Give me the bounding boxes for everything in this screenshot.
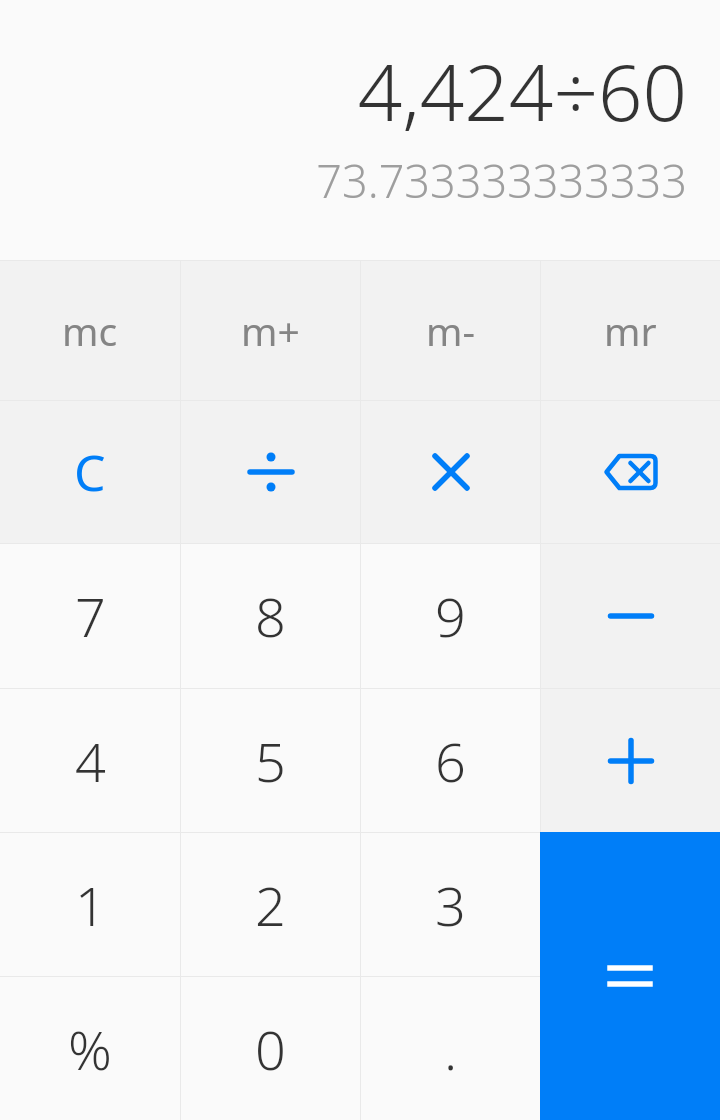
button[interactable] <box>541 833 720 976</box>
staticText: mc <box>62 304 118 357</box>
staticText: 8 <box>255 579 286 653</box>
button[interactable]: 6 <box>361 689 540 832</box>
button[interactable]: C <box>0 401 180 543</box>
button[interactable]: Divide <box>181 401 360 543</box>
button[interactable]: Equals <box>540 832 720 1120</box>
button[interactable] <box>541 544 720 688</box>
button[interactable]: 4 <box>0 689 180 832</box>
button[interactable]: 0 <box>181 977 360 1120</box>
staticText: 4 <box>75 724 106 798</box>
button[interactable]: 9 <box>361 544 540 688</box>
button[interactable]: Multiply <box>361 401 540 543</box>
button[interactable]: mc <box>0 261 180 400</box>
button[interactable]: 2 <box>181 833 360 976</box>
button[interactable]: 7 <box>0 544 180 688</box>
staticText: 1 <box>75 868 106 942</box>
button[interactable]: m+ <box>181 261 360 400</box>
staticText: m- <box>426 304 476 357</box>
staticText: 73.733333333333 <box>316 150 687 211</box>
button[interactable]: 1 <box>0 833 180 976</box>
staticText: 4,424÷60 <box>357 38 687 144</box>
button[interactable] <box>541 689 720 832</box>
button[interactable]: 3 <box>361 833 540 976</box>
staticText: C <box>74 438 106 506</box>
staticText: mr <box>604 304 657 357</box>
button[interactable]: 8 <box>181 544 360 688</box>
staticText: 3 <box>435 868 466 942</box>
staticText: 5 <box>255 724 286 798</box>
button[interactable]: % <box>0 977 180 1120</box>
staticText: 6 <box>435 724 466 798</box>
staticText: % <box>68 1012 112 1086</box>
staticText: 7 <box>75 579 106 653</box>
staticText: 9 <box>435 579 466 653</box>
button[interactable]: m- <box>361 261 540 400</box>
button[interactable]: mr <box>541 261 720 400</box>
button[interactable]: . <box>361 977 540 1120</box>
button[interactable] <box>541 977 720 1120</box>
staticText: 2 <box>255 868 286 942</box>
button[interactable]: Backspace <box>541 401 720 543</box>
button[interactable]: 5 <box>181 689 360 832</box>
staticText: m+ <box>241 304 300 357</box>
staticText: . <box>444 1012 458 1086</box>
staticText: 0 <box>255 1012 286 1086</box>
